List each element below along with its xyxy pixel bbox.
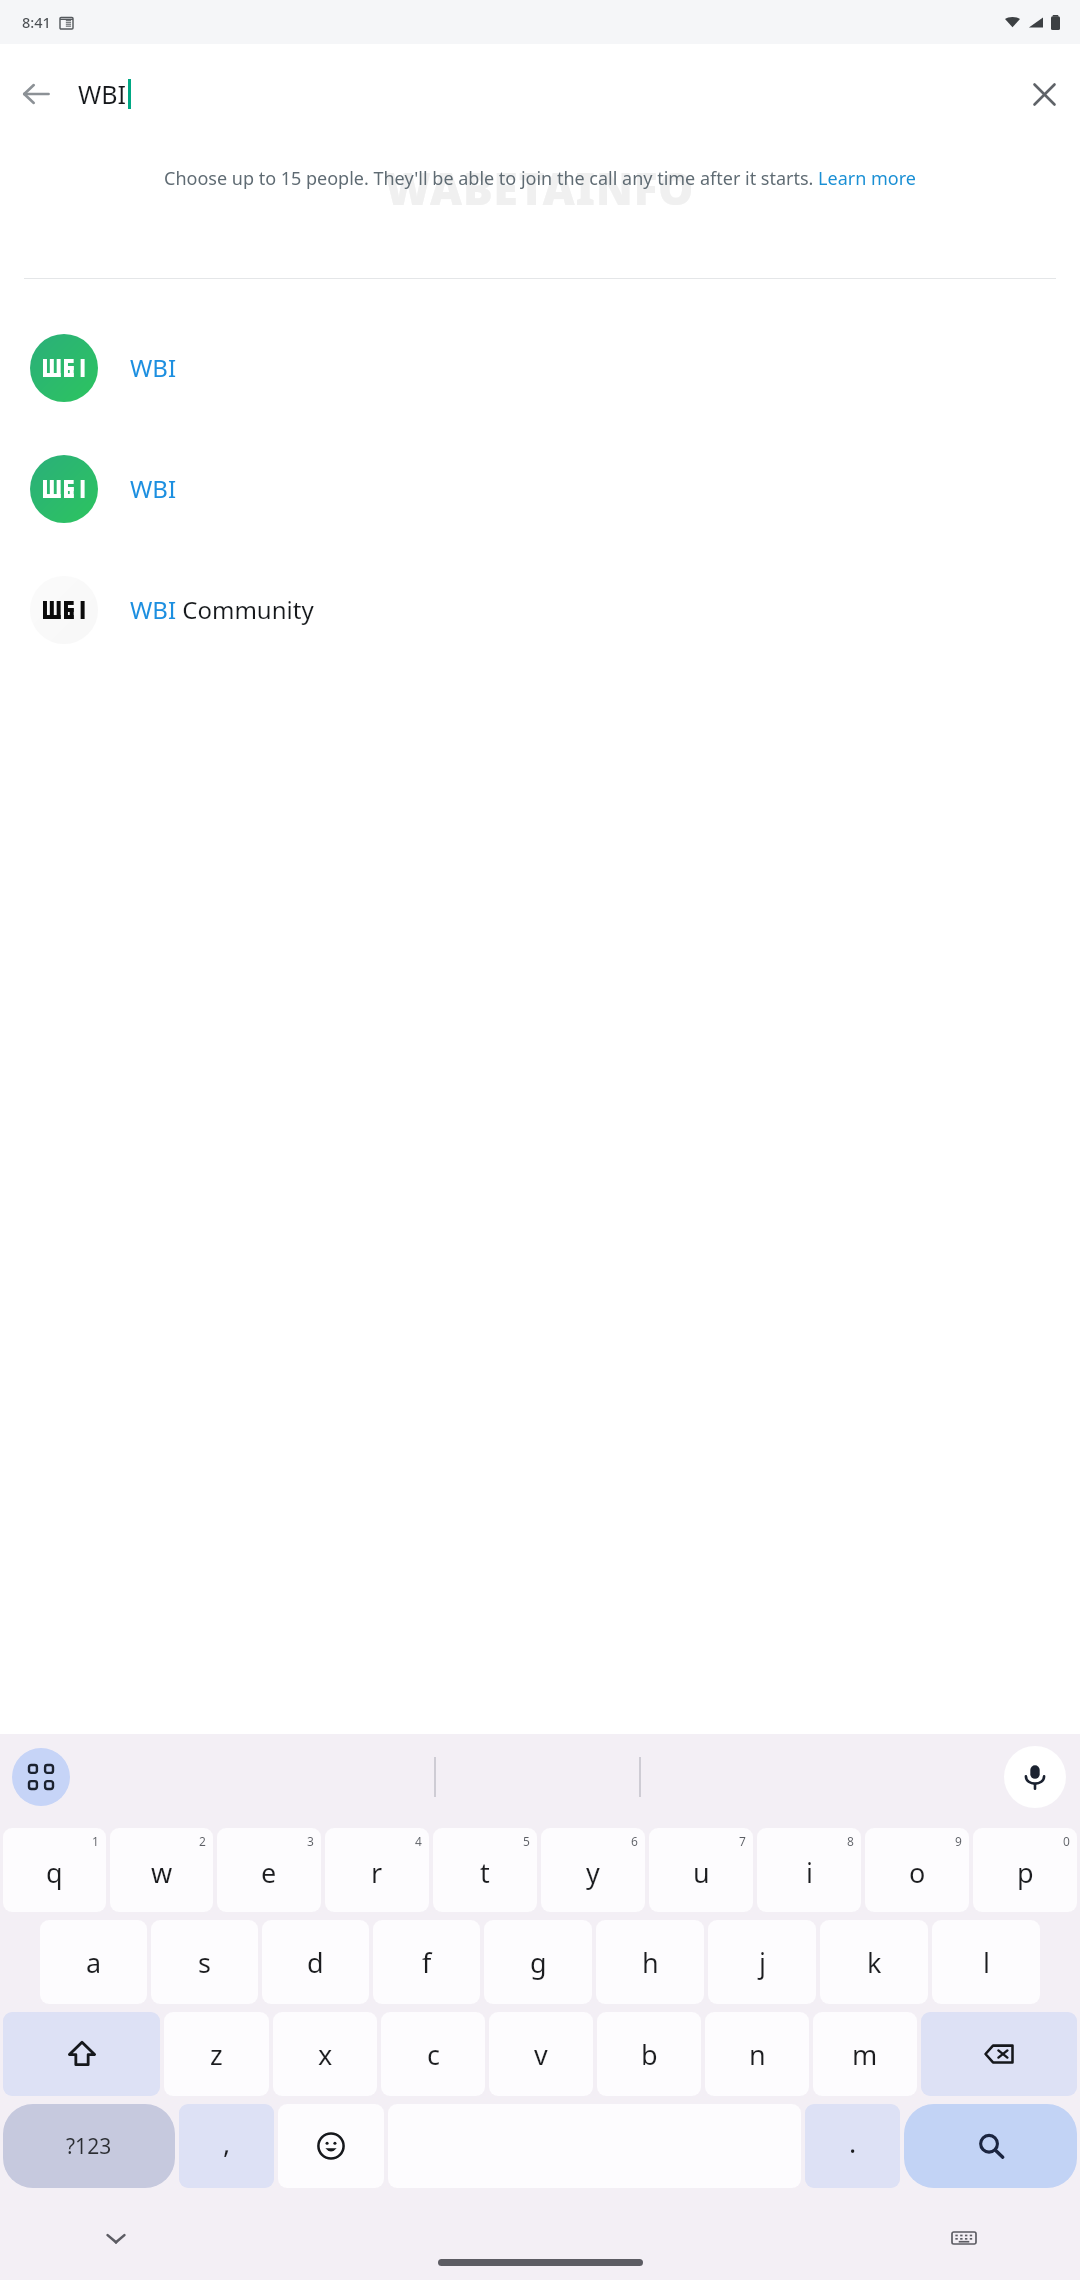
staticText: .	[849, 2124, 857, 2161]
button[interactable]: h	[596, 1920, 704, 2004]
button[interactable]: f	[373, 1920, 480, 2004]
staticText: WBI Community	[130, 593, 314, 626]
button[interactable]: b	[597, 2012, 701, 2096]
button[interactable]: v	[489, 2012, 593, 2096]
staticText: ?123	[66, 2132, 112, 2161]
staticText: 3	[307, 1833, 314, 1849]
button[interactable]: q	[3, 1828, 106, 1912]
staticText: n	[749, 2036, 766, 2073]
staticText: t	[480, 1854, 490, 1891]
button[interactable]: Shift	[3, 2012, 160, 2096]
button[interactable]: r	[325, 1828, 429, 1912]
button[interactable]: Toolbar	[12, 1748, 70, 1806]
staticText: 0	[1063, 1833, 1070, 1849]
staticText: l	[983, 1944, 990, 1981]
staticText: k	[867, 1944, 882, 1981]
staticText: 4	[415, 1833, 422, 1849]
staticText: WBI	[78, 77, 126, 111]
staticText: f	[422, 1944, 432, 1981]
staticText: o	[909, 1854, 926, 1891]
button[interactable]: s	[151, 1920, 258, 2004]
staticText: y	[586, 1854, 600, 1891]
staticText: ,	[223, 2124, 231, 2161]
button[interactable]: Hide keyboard	[92, 2214, 140, 2262]
staticText: 8	[847, 1833, 854, 1849]
button[interactable]: d	[262, 1920, 369, 2004]
staticText: x	[318, 2036, 333, 2073]
button[interactable]: a	[40, 1920, 147, 2004]
staticText: q	[46, 1854, 63, 1891]
staticText: c	[427, 2036, 440, 2073]
button[interactable]: WBI	[0, 307, 1080, 428]
button[interactable]: z	[164, 2012, 269, 2096]
button[interactable]: u	[649, 1828, 753, 1912]
staticText: 6	[631, 1833, 638, 1849]
button[interactable]: x	[273, 2012, 377, 2096]
button[interactable]: t	[433, 1828, 537, 1912]
button[interactable]: k	[820, 1920, 928, 2004]
button[interactable]: .	[805, 2104, 900, 2188]
button[interactable]: Voice input	[1004, 1746, 1066, 1808]
staticText: h	[642, 1944, 659, 1981]
staticText: b	[641, 2036, 658, 2073]
staticText: j	[759, 1944, 766, 1981]
button[interactable]: Back	[0, 58, 72, 130]
button[interactable]: o	[865, 1828, 969, 1912]
button[interactable]: c	[381, 2012, 485, 2096]
staticText: 5	[523, 1833, 530, 1849]
button[interactable]: WBI Community	[0, 549, 1080, 670]
staticText: e	[261, 1854, 277, 1891]
staticText: r	[371, 1854, 383, 1891]
button[interactable]: y	[541, 1828, 645, 1912]
staticText: 8:41	[22, 12, 51, 32]
staticText: 1	[92, 1833, 99, 1849]
staticText: z	[210, 2036, 223, 2073]
button[interactable]: Clear search	[1008, 58, 1080, 130]
button[interactable]: j	[708, 1920, 816, 2004]
button[interactable]: n	[705, 2012, 809, 2096]
staticText: p	[1017, 1854, 1034, 1891]
button[interactable]: i	[757, 1828, 861, 1912]
staticText: 9	[955, 1833, 962, 1849]
button[interactable]: p	[973, 1828, 1077, 1912]
button[interactable]: Switch keyboard	[940, 2214, 988, 2262]
staticText: v	[534, 2036, 548, 2073]
staticText: d	[307, 1944, 324, 1981]
staticText: 7	[739, 1833, 746, 1849]
staticText: i	[806, 1854, 813, 1891]
staticText: g	[530, 1944, 547, 1981]
button[interactable]: m	[813, 2012, 917, 2096]
button[interactable]: Search	[904, 2104, 1077, 2188]
staticText: u	[693, 1854, 710, 1891]
button[interactable]: ,	[179, 2104, 274, 2188]
button[interactable]: WBI	[0, 428, 1080, 549]
staticText: WBI	[130, 472, 177, 505]
staticText: WABETAINFO	[385, 158, 695, 218]
staticText: WBI	[130, 351, 177, 384]
staticText: w	[151, 1854, 173, 1891]
staticText: Choose up to 15 people. They'll be able …	[164, 166, 916, 191]
staticText: m	[852, 2036, 878, 2073]
button[interactable]: l	[932, 1920, 1040, 2004]
button[interactable]: Backspace	[921, 2012, 1077, 2096]
button[interactable]: Emoji	[278, 2104, 384, 2188]
staticText: s	[198, 1944, 211, 1981]
staticText: a	[86, 1944, 102, 1981]
button[interactable]: e	[217, 1828, 321, 1912]
button[interactable]: ?123	[3, 2104, 175, 2188]
button[interactable]: g	[484, 1920, 592, 2004]
button[interactable]: w	[110, 1828, 213, 1912]
staticText: 2	[199, 1833, 206, 1849]
